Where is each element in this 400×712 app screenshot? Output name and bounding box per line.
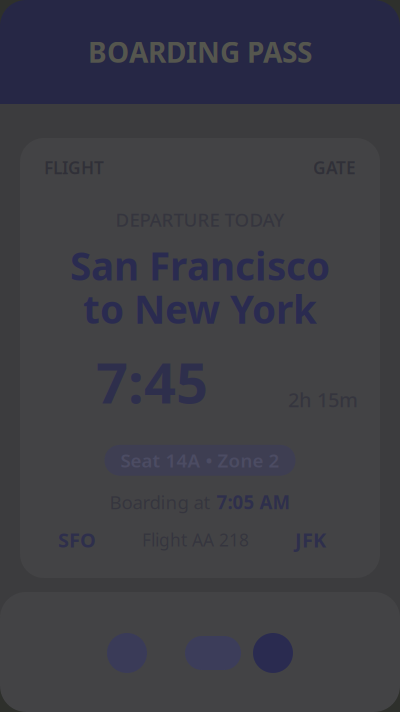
staticText: Flight AA 218 [142, 528, 249, 551]
staticText: Seat 14A • Zone 2 [120, 448, 279, 473]
button[interactable]: Trips [185, 636, 241, 670]
staticText: Boarding at [109, 490, 210, 514]
button[interactable]: Passes [107, 633, 147, 673]
button[interactable]: Profile [253, 633, 293, 673]
staticText: SFO [58, 526, 96, 553]
staticText: 7:05 AM [216, 490, 290, 514]
staticText: JFK [295, 526, 326, 553]
staticText: to New York [83, 283, 317, 334]
staticText: BOARDING PASS [88, 33, 312, 71]
button[interactable]: Seat 14A • Zone 2 [104, 445, 295, 476]
staticText: GATE [313, 156, 356, 179]
staticText: FLIGHT [44, 156, 104, 179]
staticText: 7:45 [96, 344, 208, 419]
staticText: San Francisco [70, 240, 330, 291]
staticText: DEPARTURE TODAY [115, 207, 284, 232]
staticText: 2h 15m [288, 386, 358, 413]
